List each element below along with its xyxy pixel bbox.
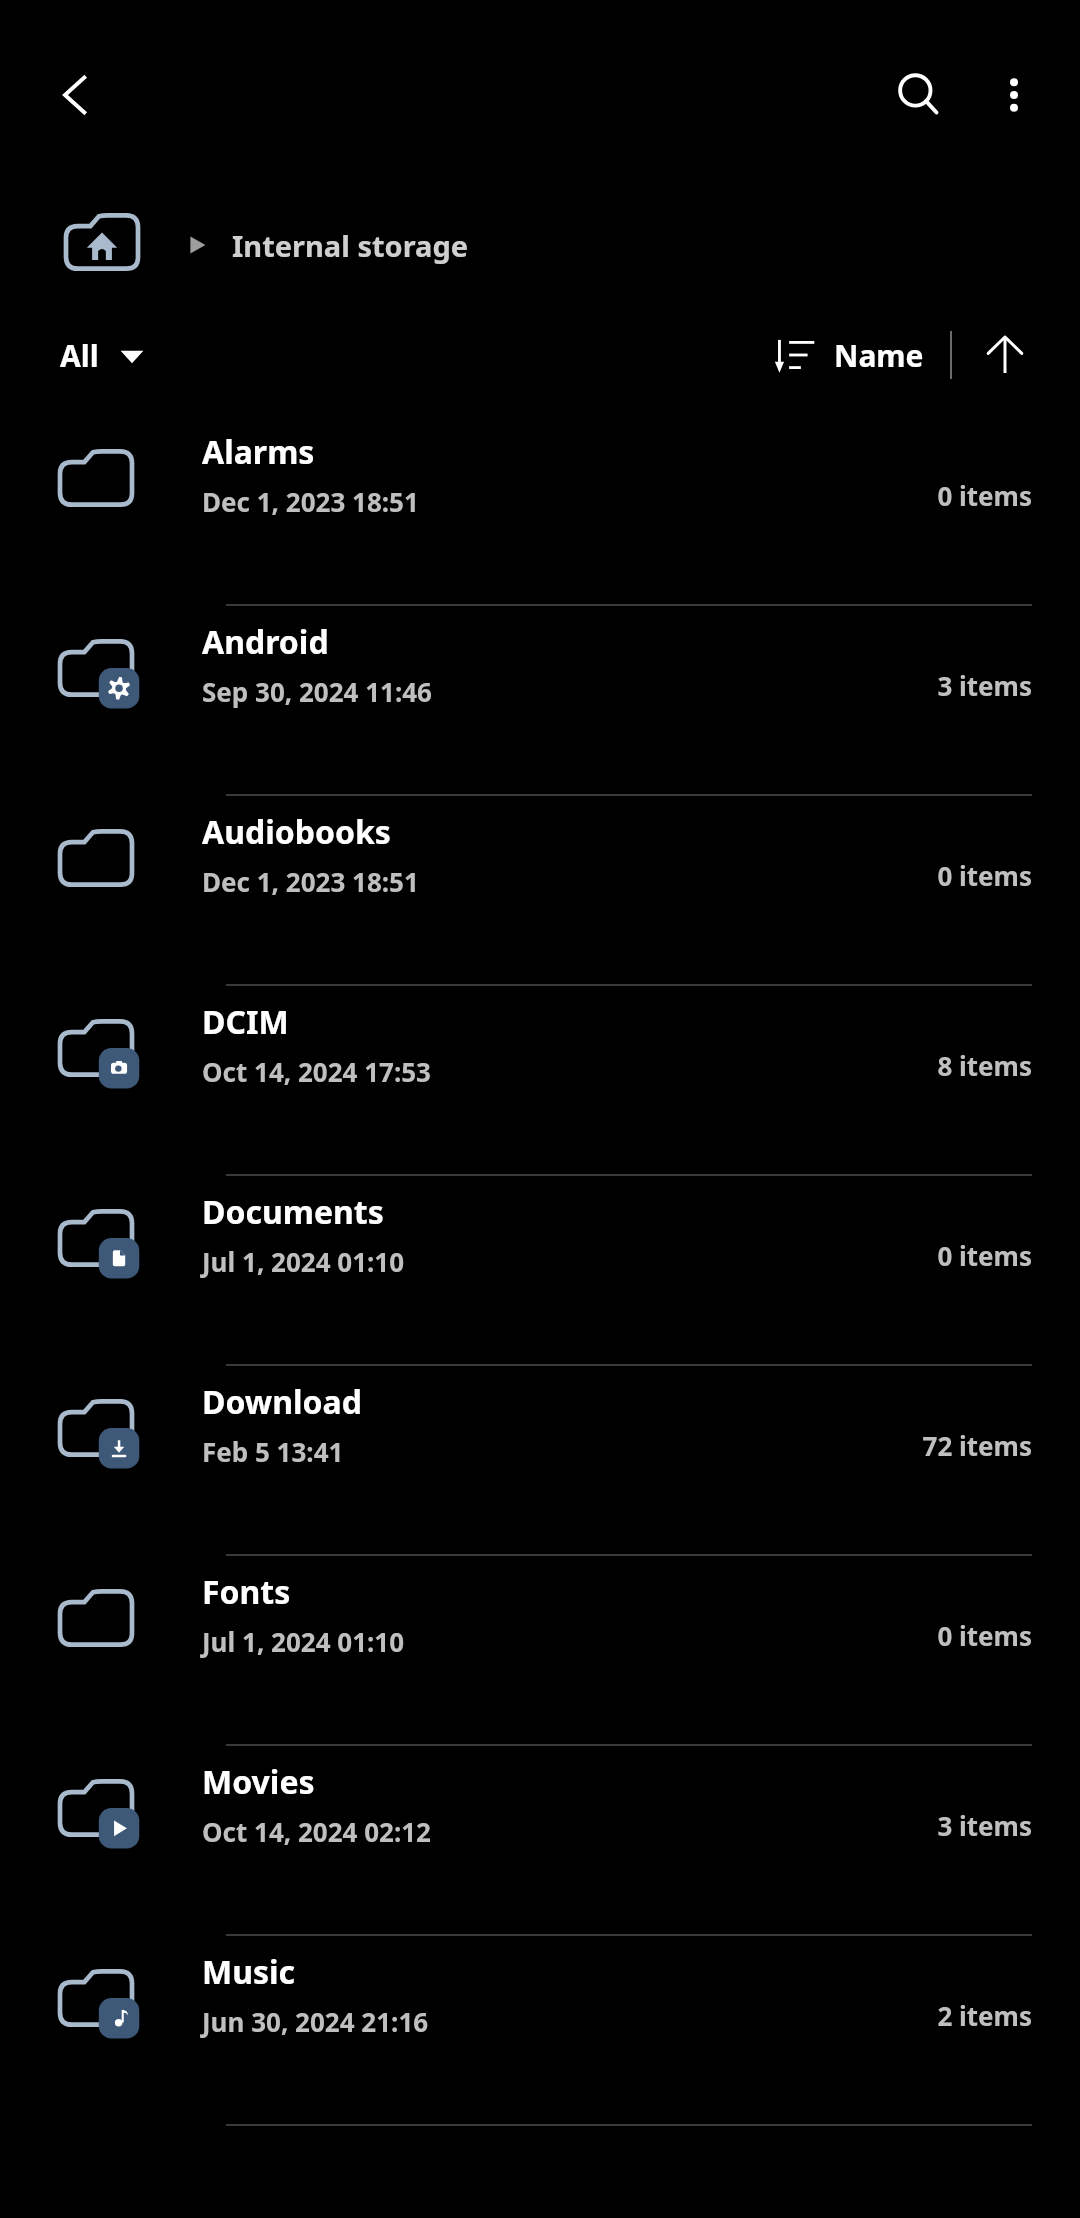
- button[interactable]: Documents: [0, 1176, 1080, 1366]
- staticText: Jun 30, 2024 21:16: [202, 2004, 429, 2039]
- staticText: Alarms: [202, 430, 315, 474]
- staticText: Fonts: [202, 1570, 291, 1614]
- staticText: Download: [202, 1380, 362, 1424]
- staticText: Music: [202, 1950, 296, 1994]
- button[interactable]: Back: [36, 55, 116, 135]
- staticText: 0 items: [937, 1618, 1032, 1653]
- staticText: 2 items: [937, 1998, 1032, 2033]
- staticText: Jul 1, 2024 01:10: [202, 1244, 405, 1279]
- staticText: 3 items: [937, 1808, 1032, 1843]
- staticText: Audiobooks: [202, 810, 391, 854]
- staticText: 3 items: [937, 668, 1032, 703]
- staticText: All: [60, 335, 99, 376]
- staticText: Name: [834, 335, 924, 376]
- button[interactable]: All: [60, 335, 145, 376]
- button[interactable]: Music: [0, 1936, 1080, 2126]
- button[interactable]: Name: [774, 334, 924, 376]
- staticText: Oct 14, 2024 17:53: [202, 1054, 431, 1089]
- staticText: Jul 1, 2024 01:10: [202, 1624, 405, 1659]
- button[interactable]: Internal storage root: [66, 208, 156, 282]
- staticText: Internal storage: [232, 226, 469, 265]
- staticText: Documents: [202, 1190, 384, 1234]
- button[interactable]: Movies: [0, 1746, 1080, 1936]
- staticText: Android: [202, 620, 329, 664]
- button[interactable]: Fonts: [0, 1556, 1080, 1746]
- staticText: 0 items: [937, 478, 1032, 513]
- button[interactable]: Audiobooks: [0, 796, 1080, 986]
- button[interactable]: DCIM: [0, 986, 1080, 1176]
- staticText: Feb 5 13:41: [202, 1434, 344, 1469]
- button[interactable]: Android: [0, 606, 1080, 796]
- staticText: Oct 14, 2024 02:12: [202, 1814, 431, 1849]
- button[interactable]: Alarms: [0, 416, 1080, 606]
- staticText: 0 items: [937, 1238, 1032, 1273]
- staticText: Movies: [202, 1760, 315, 1804]
- staticText: Dec 1, 2023 18:51: [202, 864, 419, 899]
- button[interactable]: Sort ascending: [970, 320, 1040, 390]
- staticText: Sep 30, 2024 11:46: [202, 674, 432, 709]
- staticText: DCIM: [202, 1000, 289, 1044]
- staticText: 72 items: [922, 1428, 1032, 1463]
- staticText: 0 items: [937, 858, 1032, 893]
- button[interactable]: More options: [976, 57, 1052, 133]
- button[interactable]: Download: [0, 1366, 1080, 1556]
- button[interactable]: Search: [876, 52, 962, 138]
- staticText: Dec 1, 2023 18:51: [202, 484, 419, 519]
- staticText: 8 items: [937, 1048, 1032, 1083]
